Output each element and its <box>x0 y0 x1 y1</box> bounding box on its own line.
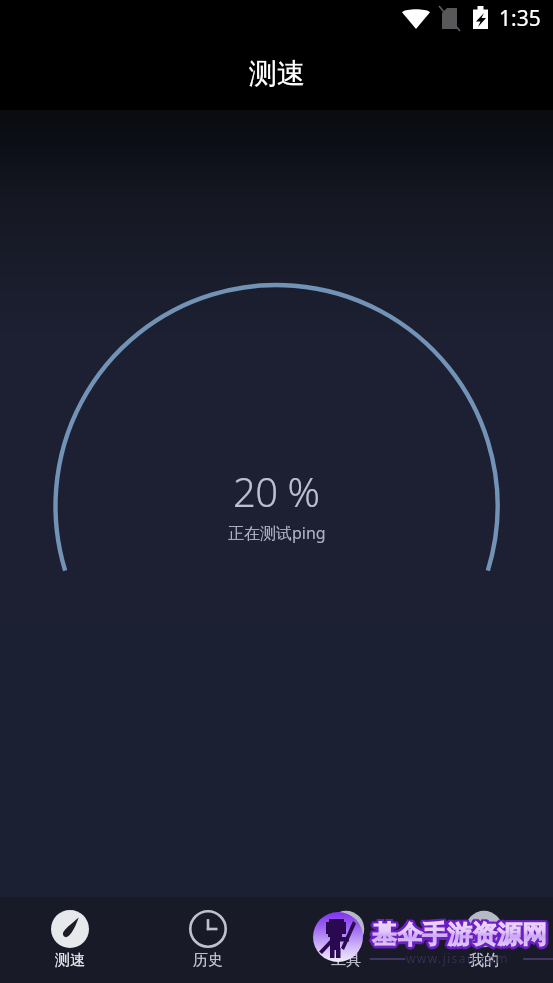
staticText: 基伞手游资源网 <box>372 921 547 952</box>
staticText: 基伞手游资源网 <box>372 919 547 950</box>
staticText: 正在测试ping <box>228 522 326 544</box>
staticText: 我的 <box>469 951 499 970</box>
staticText: 基伞手游资源网 <box>370 921 545 952</box>
button[interactable]: 我的 <box>415 897 553 983</box>
staticText: 工具 <box>331 951 361 970</box>
staticText: 基伞手游资源网 <box>369 919 544 950</box>
staticText: www.jisan.com <box>406 950 509 966</box>
staticText: 基伞手游资源网 <box>372 922 547 953</box>
staticText: 历史 <box>193 951 223 970</box>
staticText: 20 % <box>233 464 320 518</box>
staticText: 基伞手游资源网 <box>370 917 545 948</box>
button[interactable]: 历史 <box>139 897 277 983</box>
staticText: 基伞手游资源网 <box>374 921 549 952</box>
staticText: 基伞手游资源网 <box>375 919 550 950</box>
staticText: 测速 <box>249 56 305 91</box>
button[interactable]: 测速 <box>0 897 139 983</box>
staticText: 1:35 <box>499 4 541 33</box>
button[interactable]: 工具 <box>277 897 415 983</box>
staticText: 基伞手游资源网 <box>372 917 547 948</box>
staticText: 基伞手游资源网 <box>374 917 549 948</box>
staticText: 测速 <box>55 951 85 970</box>
staticText: 基伞手游资源网 <box>374 919 549 950</box>
staticText: 基伞手游资源网 <box>370 919 545 950</box>
